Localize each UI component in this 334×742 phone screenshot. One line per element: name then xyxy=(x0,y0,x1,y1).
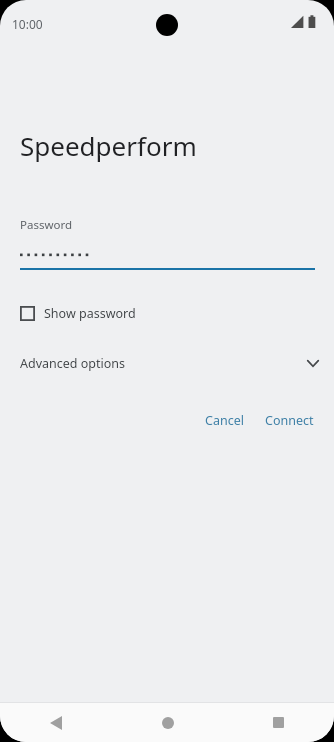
staticText: Password xyxy=(20,217,73,233)
button[interactable]: Show password xyxy=(0,301,334,326)
button[interactable]: Recent apps xyxy=(223,703,334,742)
staticText: Cancel xyxy=(205,412,244,429)
button[interactable]: Advanced options xyxy=(0,350,334,377)
staticText: 10:00 xyxy=(12,16,43,32)
staticText: Connect xyxy=(265,412,314,429)
button[interactable]: Back xyxy=(0,703,112,742)
staticText: Speedperform xyxy=(20,128,197,163)
staticText: Show password xyxy=(44,305,136,322)
staticText: Advanced options xyxy=(20,355,126,372)
button[interactable] xyxy=(20,246,315,264)
button[interactable]: Connect xyxy=(257,407,322,434)
button[interactable]: Home xyxy=(112,703,223,742)
button[interactable]: Cancel xyxy=(197,407,252,434)
